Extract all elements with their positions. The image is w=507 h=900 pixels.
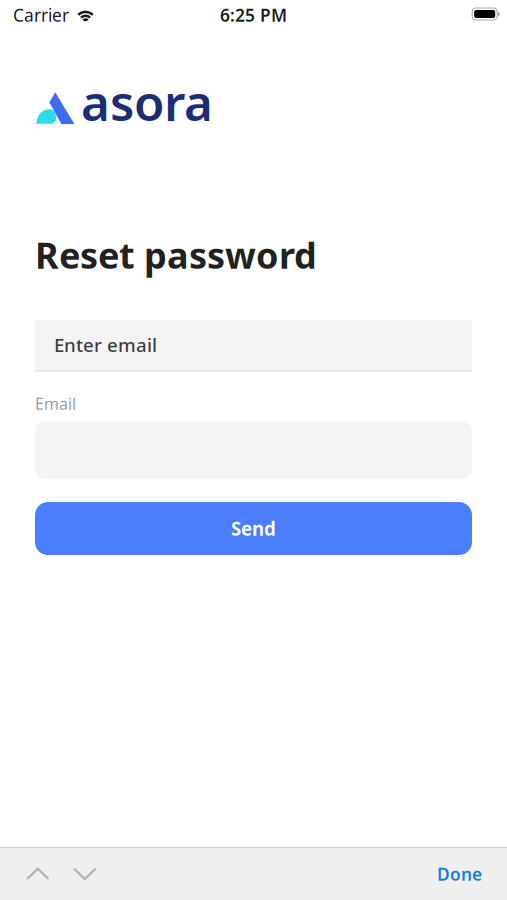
staticText: Carrier: [13, 3, 69, 26]
button[interactable]: Enter email: [35, 320, 472, 372]
staticText: Email: [35, 393, 76, 414]
button[interactable]: Send: [35, 502, 472, 555]
button[interactable]: Done: [417, 848, 507, 900]
staticText: Send: [231, 516, 276, 541]
staticText: Reset password: [35, 231, 317, 279]
staticText: asora: [81, 69, 213, 134]
staticText: Done: [437, 862, 482, 885]
staticText: 6:25 PM: [220, 3, 287, 26]
button[interactable]: Next field: [73, 848, 120, 900]
staticText: Enter email: [54, 332, 157, 357]
button[interactable]: Previous field: [0, 848, 73, 900]
